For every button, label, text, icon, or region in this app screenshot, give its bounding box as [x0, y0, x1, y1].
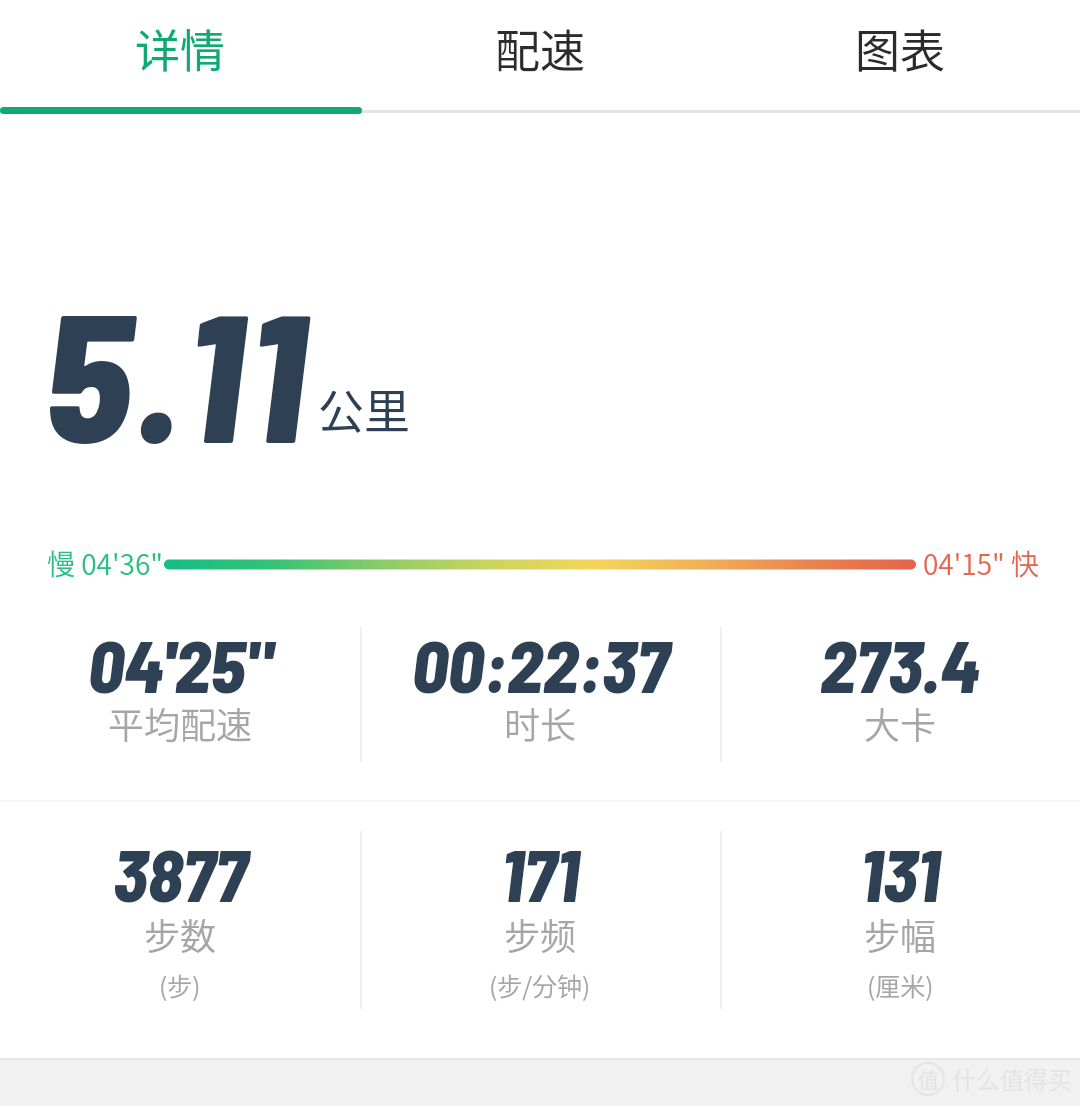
staticText: 步频	[504, 908, 577, 960]
button[interactable]: 04'25"	[0, 627, 360, 762]
staticText: 3877	[113, 830, 248, 916]
button[interactable]: 详情	[0, 0, 360, 97]
staticText: 5.11	[44, 262, 310, 479]
staticText: 平均配速	[108, 697, 253, 749]
button[interactable]: 图表	[720, 0, 1080, 97]
button[interactable]: 配速	[360, 0, 720, 97]
staticText: 04'15" 快	[923, 543, 1040, 584]
staticText: 慢 04'36"	[47, 543, 164, 584]
staticText: (步/分钟)	[489, 967, 591, 1003]
staticText: 值	[918, 1064, 939, 1094]
staticText: 273.4	[820, 621, 980, 707]
staticText: 步幅	[864, 908, 937, 960]
button[interactable]: 273.4	[720, 627, 1080, 762]
staticText: 图表	[855, 16, 946, 81]
staticText: 详情	[135, 16, 226, 81]
button[interactable]: 00:22:37	[360, 627, 720, 762]
button[interactable]: 3877	[0, 831, 360, 1009]
staticText: 00:22:37	[412, 621, 669, 707]
button[interactable]: 171	[360, 831, 720, 1009]
other: Pace range	[164, 554, 916, 576]
staticText: 步数	[144, 908, 217, 960]
staticText: 04'25"	[88, 621, 273, 707]
staticText: 配速	[495, 16, 586, 81]
staticText: 171	[501, 830, 579, 916]
staticText: (步)	[159, 967, 201, 1003]
staticText: 什么值得买	[952, 1061, 1072, 1096]
staticText: 公里	[318, 375, 410, 442]
staticText: 131	[860, 830, 940, 916]
staticText: (厘米)	[867, 967, 934, 1003]
staticText: 大卡	[864, 697, 937, 749]
staticText: 时长	[504, 697, 577, 749]
button[interactable]: 131	[720, 831, 1080, 1009]
